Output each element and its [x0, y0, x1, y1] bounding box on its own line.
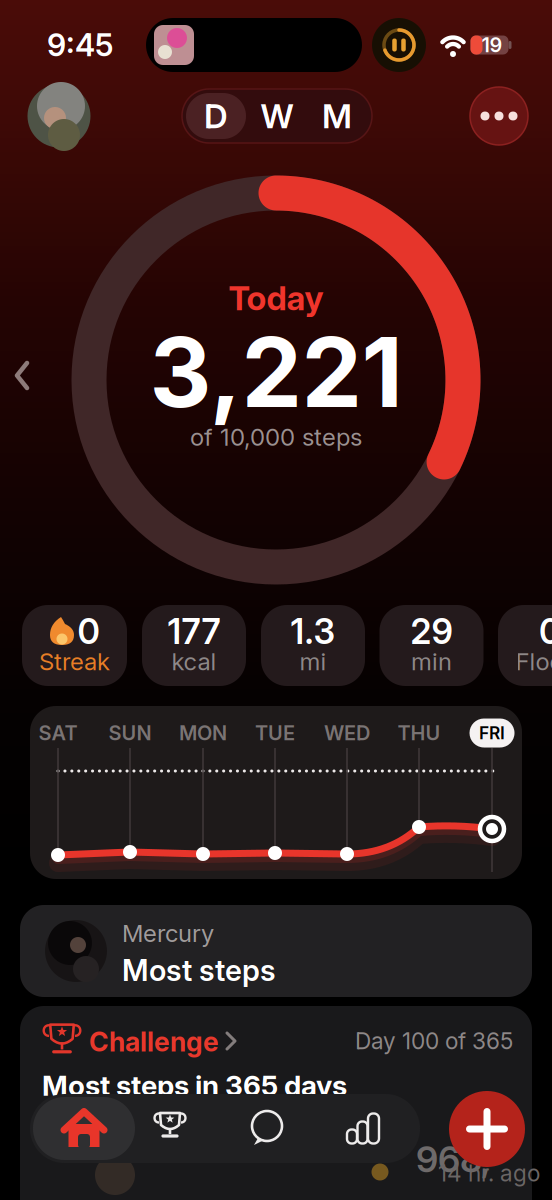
staticText: SUN — [108, 721, 151, 745]
staticText: 0 — [77, 611, 99, 652]
staticText: 29 — [410, 611, 452, 652]
staticText: min — [411, 647, 452, 676]
staticText: Today — [228, 278, 323, 318]
button[interactable]: Messages — [224, 1095, 310, 1161]
staticText: mi — [299, 647, 326, 676]
button[interactable]: Challenge — [31, 1019, 261, 1063]
button[interactable]: Home — [33, 1095, 135, 1161]
staticText: kcal — [171, 647, 216, 676]
staticText: W — [260, 96, 293, 136]
staticText: SAT — [38, 721, 77, 745]
staticText: Most steps — [122, 953, 276, 988]
staticText: THU — [397, 721, 440, 745]
button[interactable]: D — [186, 93, 246, 139]
staticText: MON — [179, 721, 227, 745]
staticText: FRI — [479, 723, 505, 743]
staticText: Floors — [515, 647, 552, 676]
button[interactable]: Back — [6, 356, 38, 395]
staticText: 14 hr. ago — [438, 1160, 540, 1187]
staticText: 1.3 — [290, 611, 335, 652]
staticText: Mercury — [122, 919, 214, 947]
staticText: 0 — [539, 611, 552, 652]
staticText: 968, — [416, 1138, 490, 1180]
staticText: TUE — [255, 721, 295, 745]
staticText: Most steps in 365 days — [42, 1069, 347, 1102]
staticText: 177 — [167, 611, 220, 652]
staticText: of 10,000 steps — [190, 423, 362, 451]
button[interactable]: Mercury — [20, 905, 532, 997]
button[interactable]: Profile — [27, 84, 90, 147]
staticText: WED — [324, 721, 370, 745]
staticText: 3,221 — [149, 315, 402, 429]
button[interactable]: Challenges — [127, 1095, 213, 1161]
staticText: Challenge — [89, 1026, 219, 1057]
staticText: D — [204, 96, 228, 136]
button[interactable]: More options — [470, 87, 528, 145]
button[interactable]: Statistics — [320, 1095, 406, 1161]
button[interactable]: M — [307, 93, 367, 139]
staticText: 19 — [481, 33, 502, 57]
staticText: 9:45 — [47, 27, 113, 63]
staticText: M — [322, 96, 352, 136]
button[interactable]: W — [247, 93, 307, 139]
button[interactable]: Add — [449, 1091, 525, 1167]
staticText: Streak — [39, 647, 110, 676]
staticText: Day 100 of 365 — [355, 1028, 513, 1054]
